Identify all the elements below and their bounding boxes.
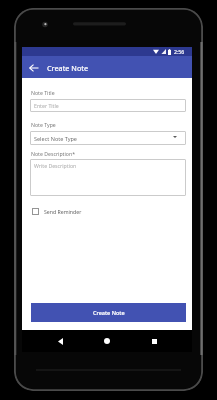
staticText: Note Type xyxy=(31,121,56,128)
staticText: Note Title xyxy=(31,89,55,96)
staticText: Enter Title xyxy=(34,102,59,109)
staticText: Create Note xyxy=(93,309,125,316)
button[interactable]: Back xyxy=(51,332,69,350)
button[interactable]: Create Note xyxy=(31,303,186,322)
staticText: 2:56 xyxy=(174,48,185,55)
button[interactable]: Write Description xyxy=(30,159,186,196)
button[interactable]: Home xyxy=(98,332,116,350)
button[interactable]: Enter Title xyxy=(30,99,186,112)
button[interactable]: Recent apps xyxy=(145,332,163,350)
staticText: Write Description xyxy=(34,162,77,169)
button[interactable]: Select Note Type xyxy=(30,131,186,145)
staticText: Select Note Type xyxy=(34,135,77,142)
staticText: Send Reminder xyxy=(44,208,82,215)
button[interactable]: Navigate up xyxy=(27,61,41,75)
button[interactable]: Send Reminder xyxy=(32,208,82,215)
staticText: Create Note xyxy=(47,63,89,73)
staticText: Note Description* xyxy=(31,150,76,157)
